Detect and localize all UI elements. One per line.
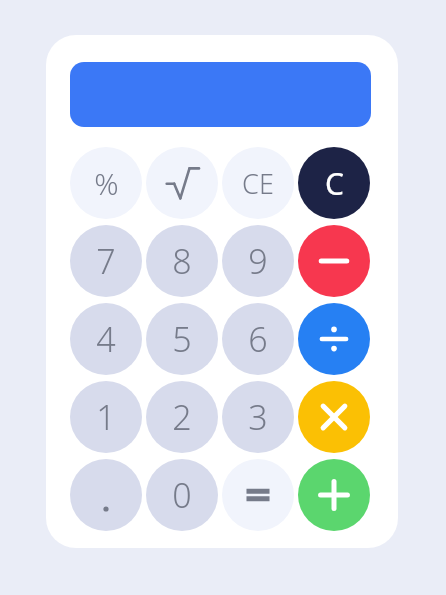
button[interactable]: 2 <box>146 381 218 453</box>
staticText: % <box>94 163 119 204</box>
button[interactable]: 6 <box>222 303 294 375</box>
button[interactable]: Decimal point <box>70 459 142 531</box>
button[interactable]: 3 <box>222 381 294 453</box>
staticText: 4 <box>96 316 116 362</box>
button[interactable]: 1 <box>70 381 142 453</box>
button[interactable]: 7 <box>70 225 142 297</box>
button[interactable]: % <box>70 147 142 219</box>
staticText: 9 <box>248 238 268 284</box>
button[interactable]: 9 <box>222 225 294 297</box>
button[interactable]: 5 <box>146 303 218 375</box>
staticText: 1 <box>96 394 116 440</box>
staticText: 8 <box>172 238 192 284</box>
button[interactable]: Plus <box>298 459 370 531</box>
staticText: 0 <box>172 472 192 518</box>
staticText: 5 <box>172 316 192 362</box>
button[interactable]: 4 <box>70 303 142 375</box>
staticText: C <box>325 163 344 204</box>
staticText: 6 <box>248 316 268 362</box>
button[interactable]: Square root <box>146 147 218 219</box>
staticText: 2 <box>172 394 192 440</box>
button[interactable]: Minus <box>298 225 370 297</box>
button[interactable]: Divide <box>298 303 370 375</box>
staticText: CE <box>242 165 274 202</box>
button[interactable]: Display <box>70 62 371 127</box>
button[interactable]: 8 <box>146 225 218 297</box>
button[interactable]: Multiply <box>298 381 370 453</box>
button[interactable]: Equals <box>222 459 294 531</box>
button[interactable]: C <box>298 147 370 219</box>
staticText: 3 <box>248 394 268 440</box>
staticText: 7 <box>96 238 116 284</box>
button[interactable]: 0 <box>146 459 218 531</box>
button[interactable]: CE <box>222 147 294 219</box>
